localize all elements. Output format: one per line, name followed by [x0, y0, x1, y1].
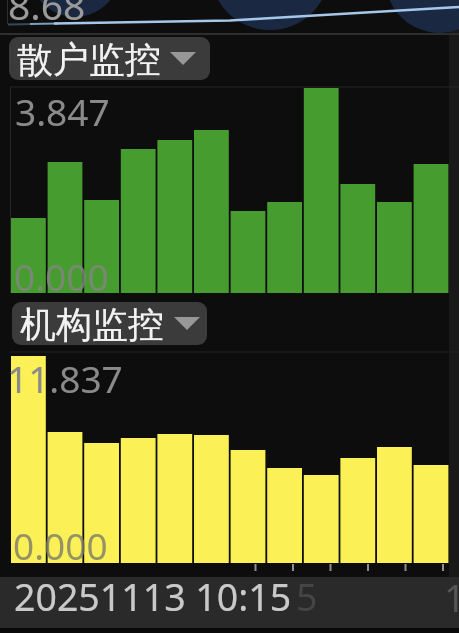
staticText: 散户监控: [17, 37, 161, 80]
staticText: 1: [444, 572, 459, 623]
staticText: 0.000: [13, 520, 108, 570]
staticText: 11.837: [7, 353, 123, 403]
staticText: 20251113 10:15: [14, 571, 292, 622]
staticText: 5: [296, 571, 318, 622]
button[interactable]: 机构监控: [12, 302, 207, 345]
staticText: 8.68: [8, 0, 86, 31]
staticText: 0.000: [14, 251, 109, 301]
staticText: 机构监控: [20, 302, 164, 345]
staticText: 3.847: [15, 86, 110, 136]
button[interactable]: 散户监控: [9, 37, 210, 80]
